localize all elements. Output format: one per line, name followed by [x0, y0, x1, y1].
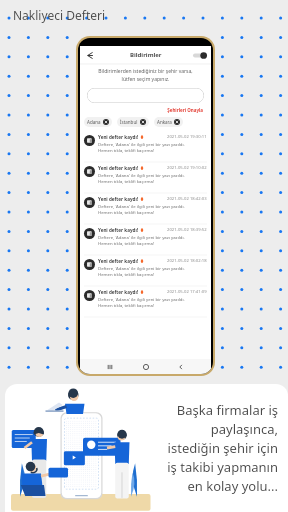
button[interactable]: Yeni defter kaydı!	[80, 132, 211, 162]
staticText: Yeni defter kaydı!	[98, 258, 139, 264]
staticText: Yeni defter kaydı!	[98, 289, 139, 295]
staticText: Bildirimler	[130, 51, 162, 59]
button[interactable]: İstanbul	[117, 117, 149, 127]
staticText: 2021-05-02 18:02:18	[167, 258, 207, 264]
staticText: Adana	[87, 119, 101, 125]
button[interactable]: Yeni defter kaydı!	[80, 194, 211, 224]
staticText: 2021-05-02 19:10:02	[167, 165, 207, 171]
staticText: 2021-05-02 17:41:09	[167, 289, 207, 295]
staticText: 2021-05-02 18:42:03	[167, 196, 207, 202]
staticText: Başka firmalar iş paylaşınca, istediğin …	[155, 401, 278, 495]
staticText: 2021-05-02 19:30:11	[167, 134, 207, 140]
button[interactable]: Ankara	[154, 117, 183, 127]
staticText: İstanbul	[120, 119, 138, 125]
button[interactable]: Adana	[84, 117, 112, 127]
button[interactable]: Yeni defter kaydı!	[80, 225, 211, 255]
staticText: Deftere, 'Adana' ile ilgili yeni bir yaz…	[98, 203, 185, 215]
button[interactable]: Toggle notifications	[193, 52, 207, 59]
staticText: Bildirimlerden istediğiniz bir şehir var…	[85, 68, 206, 83]
staticText: Yeni defter kaydı!	[98, 196, 139, 202]
staticText: Yeni defter kaydı!	[98, 227, 139, 233]
button[interactable]: Yeni defter kaydı!	[80, 287, 211, 317]
staticText: Deftere, 'Adana' ile ilgili yeni bir yaz…	[98, 265, 185, 277]
staticText: Deftere, 'Adana' ile ilgili yeni bir yaz…	[98, 296, 185, 308]
staticText: Deftere, 'Adana' ile ilgili yeni bir yaz…	[98, 172, 185, 184]
button[interactable]: Yeni defter kaydı!	[80, 163, 211, 193]
staticText: Deftere, 'Adana' ile ilgili yeni bir yaz…	[98, 234, 185, 246]
staticText: Yeni defter kaydı!	[98, 165, 139, 171]
button[interactable]: Back	[175, 361, 187, 373]
button[interactable]: Yeni defter kaydı!	[80, 256, 211, 286]
staticText: Ankara	[157, 119, 172, 125]
staticText: 2021-05-02 18:39:52	[167, 227, 207, 233]
button[interactable]: Recents	[104, 361, 116, 373]
staticText: Yeni defter kaydı!	[98, 134, 139, 140]
button[interactable]: Back	[84, 50, 95, 61]
button[interactable]: Home	[140, 361, 152, 373]
staticText: Deftere, 'Adana' ile ilgili yeni bir yaz…	[98, 141, 185, 153]
staticText: Nakliyeci Defteri	[13, 7, 106, 23]
button[interactable]	[87, 88, 204, 103]
button[interactable]: Şehirleri Onayla	[80, 107, 203, 113]
button[interactable]: Başka firmalar iş paylaşınca, istediğin …	[5, 384, 288, 512]
